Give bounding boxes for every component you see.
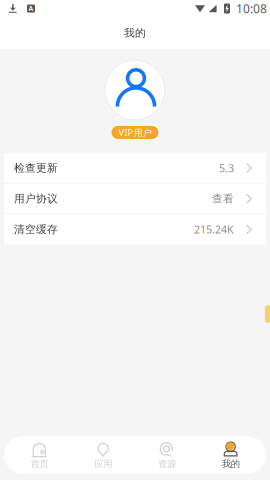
button[interactable]: 应用 [71, 436, 135, 474]
button[interactable]: 我的 [199, 436, 263, 474]
button[interactable]: 用户协议 [4, 184, 266, 214]
staticText: 5.3 [219, 161, 234, 175]
staticText: 我的 [222, 458, 240, 470]
staticText: 检查更新 [14, 161, 58, 174]
button[interactable]: 首页 [7, 436, 71, 474]
staticText: 我的 [124, 26, 146, 39]
staticText: 查看 [212, 192, 234, 205]
staticText: 用户协议 [14, 192, 58, 205]
staticText: 10:08 [236, 0, 267, 16]
button[interactable]: 检查更新 [4, 153, 266, 183]
staticText: A [28, 4, 33, 13]
staticText: 清空缓存 [14, 223, 58, 236]
button[interactable]: 资源 [135, 436, 199, 474]
button[interactable]: 清空缓存 [4, 214, 266, 244]
staticText: 资源 [158, 458, 176, 470]
staticText: 应用 [94, 458, 112, 470]
staticText: 215.24K [194, 222, 234, 236]
staticText: VIP用户 [118, 126, 151, 139]
staticText: 首页 [30, 458, 48, 470]
